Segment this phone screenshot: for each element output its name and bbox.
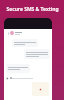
other: Play (6, 77, 9, 80)
button[interactable] (6, 64, 30, 73)
button[interactable]: Back (6, 31, 10, 35)
staticText: Secure SMS & Texting (6, 6, 59, 13)
button[interactable] (32, 82, 49, 96)
button[interactable]: Play (6, 75, 36, 81)
button[interactable] (12, 39, 38, 47)
button[interactable] (24, 49, 50, 59)
button[interactable]: Back (6, 29, 50, 37)
